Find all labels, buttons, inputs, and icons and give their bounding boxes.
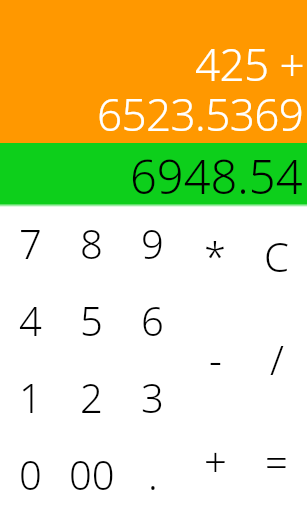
staticText: C (264, 229, 289, 283)
button[interactable]: nine (122, 204, 183, 281)
button[interactable]: decimal point (122, 435, 183, 512)
staticText: 00 (69, 447, 115, 501)
staticText: - (209, 332, 222, 386)
button[interactable]: one (0, 358, 61, 435)
button[interactable]: four (0, 281, 61, 358)
staticText: 0 (19, 447, 42, 501)
button[interactable]: minus (184, 307, 246, 410)
staticText: 7 (19, 216, 42, 270)
staticText: + (204, 434, 227, 488)
staticText: 425 + (195, 34, 304, 94)
button[interactable]: seven (0, 204, 61, 281)
staticText: 6948.54 (130, 144, 303, 205)
button[interactable]: zero (0, 435, 61, 512)
button[interactable]: eight (61, 204, 122, 281)
staticText: 9 (141, 216, 164, 270)
staticText: . (148, 447, 158, 501)
button[interactable]: three (122, 358, 183, 435)
staticText: / (270, 332, 284, 386)
button[interactable]: five (61, 281, 122, 358)
staticText: * (204, 229, 227, 283)
staticText: 1 (19, 370, 42, 424)
button[interactable]: double zero (61, 435, 122, 512)
button[interactable]: six (122, 281, 183, 358)
button[interactable]: divide (246, 307, 307, 410)
button[interactable]: equals (246, 410, 307, 512)
staticText: 3 (141, 370, 164, 424)
staticText: 4 (19, 293, 42, 347)
button[interactable]: two (61, 358, 122, 435)
staticText: 6523.5369 (97, 84, 304, 144)
button[interactable]: multiply (184, 204, 246, 307)
button[interactable]: clear (246, 204, 307, 307)
staticText: 5 (80, 293, 103, 347)
staticText: 2 (80, 370, 103, 424)
button[interactable]: plus (184, 410, 246, 512)
staticText: 8 (80, 216, 103, 270)
staticText: = (265, 434, 288, 488)
staticText: 6 (141, 293, 164, 347)
